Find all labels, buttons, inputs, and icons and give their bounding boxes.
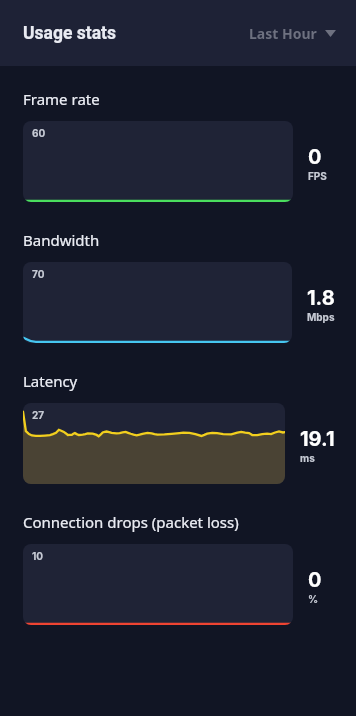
button[interactable]: Frame rate [23,89,335,202]
staticText: Mbps [307,311,335,323]
staticText: FPS [308,170,327,182]
staticText: Connection drops (packet loss) [23,512,239,532]
button[interactable]: Connection drops (packet loss) [23,512,335,625]
staticText: Last Hour [249,24,317,43]
button[interactable]: Last Hour [235,13,356,54]
staticText: ms [300,452,315,464]
staticText: Frame rate [23,89,100,109]
button[interactable]: Latency [23,371,335,484]
other: Change time range [325,30,336,37]
staticText: 27 [32,409,45,421]
staticText: 10 [32,550,44,562]
button[interactable]: Bandwidth [23,230,335,343]
staticText: 0 [308,568,322,592]
staticText: Usage stats [23,23,116,44]
staticText: 0 [308,145,322,169]
staticText: % [308,593,319,605]
staticText: 60 [32,127,46,139]
staticText: Bandwidth [23,230,100,250]
staticText: 1.8 [307,286,335,310]
staticText: 19.1 [300,427,335,451]
staticText: Latency [23,371,78,391]
staticText: 70 [32,268,45,280]
